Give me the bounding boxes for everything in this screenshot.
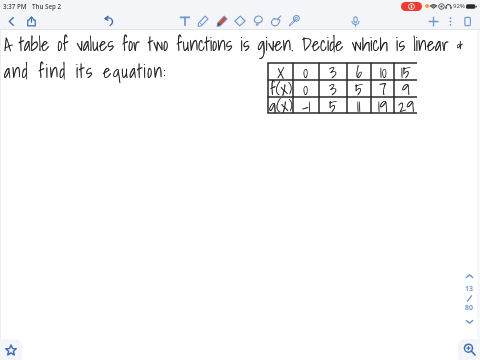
staticText: 13 bbox=[465, 284, 474, 294]
staticText: A table of values for two functions is g… bbox=[4, 30, 464, 59]
button[interactable]: Previous page bbox=[462, 269, 476, 283]
staticText: and find its equation: bbox=[4, 57, 167, 86]
button[interactable]: Pages bbox=[459, 13, 475, 29]
staticText: -1 bbox=[302, 93, 311, 113]
staticText: 19 bbox=[378, 93, 388, 113]
button[interactable]: Hand bbox=[268, 13, 284, 29]
staticText: f(x) bbox=[270, 76, 292, 96]
staticText: A table of values for two functions is g… bbox=[4, 30, 464, 59]
staticText: 5 bbox=[355, 76, 363, 96]
staticText: 3 bbox=[329, 59, 337, 79]
staticText: g(x) bbox=[269, 93, 293, 113]
staticText: 7 bbox=[379, 76, 387, 96]
staticText: 3:37 PM bbox=[3, 2, 27, 10]
button[interactable]: Add bbox=[425, 13, 441, 29]
staticText: 7 bbox=[379, 76, 387, 96]
button[interactable]: Screen recording bbox=[401, 2, 422, 11]
staticText: 29 bbox=[398, 93, 415, 113]
staticText: 0 bbox=[303, 59, 309, 79]
staticText: X bbox=[277, 59, 285, 79]
button[interactable]: More options bbox=[442, 13, 458, 29]
button[interactable]: Pen bbox=[195, 13, 211, 29]
staticText: 11 bbox=[357, 93, 361, 113]
staticText: g(x) bbox=[269, 93, 293, 113]
staticText: 6 bbox=[356, 59, 363, 79]
staticText: 3 bbox=[329, 76, 337, 96]
staticText: Thu Sep 2 bbox=[32, 2, 62, 10]
button[interactable]: Next page bbox=[462, 314, 476, 328]
staticText: 5 bbox=[329, 93, 337, 113]
staticText: 9 bbox=[402, 76, 410, 96]
staticText: 92% bbox=[453, 2, 465, 10]
staticText: 10 bbox=[380, 59, 387, 79]
button[interactable]: Share bbox=[23, 13, 39, 29]
staticText: 6 bbox=[356, 59, 363, 79]
button[interactable]: Microphone bbox=[347, 13, 363, 29]
staticText: and find its equation: bbox=[4, 57, 167, 86]
staticText: 10 bbox=[380, 59, 387, 79]
button[interactable]: Text tool bbox=[177, 13, 193, 29]
staticText: 5 bbox=[355, 76, 363, 96]
staticText: 5 bbox=[329, 93, 337, 113]
staticText: 19 bbox=[378, 93, 388, 113]
staticText: 3 bbox=[329, 59, 337, 79]
staticText: 9 bbox=[402, 76, 410, 96]
button[interactable]: Eraser bbox=[232, 13, 248, 29]
button[interactable]: Bookmark bbox=[0, 339, 22, 360]
staticText: 15 bbox=[401, 59, 411, 79]
staticText: f(x) bbox=[270, 76, 292, 96]
staticText: 11 bbox=[357, 93, 361, 113]
button[interactable]: Shape tool bbox=[286, 13, 302, 29]
button[interactable]: Back bbox=[3, 13, 19, 29]
button[interactable]: Undo bbox=[101, 13, 117, 29]
staticText: 0 bbox=[303, 76, 309, 96]
staticText: 15 bbox=[401, 59, 411, 79]
button[interactable]: Highlighter bbox=[214, 13, 230, 29]
button[interactable]: Lasso bbox=[250, 13, 266, 29]
staticText: X bbox=[277, 59, 285, 79]
staticText: -1 bbox=[302, 93, 311, 113]
staticText: 0 bbox=[303, 59, 309, 79]
staticText: 3 bbox=[329, 76, 337, 96]
staticText: 29 bbox=[398, 93, 415, 113]
button[interactable]: Zoom bbox=[458, 339, 480, 360]
staticText: 0 bbox=[303, 76, 309, 96]
staticText: 80 bbox=[465, 303, 474, 313]
